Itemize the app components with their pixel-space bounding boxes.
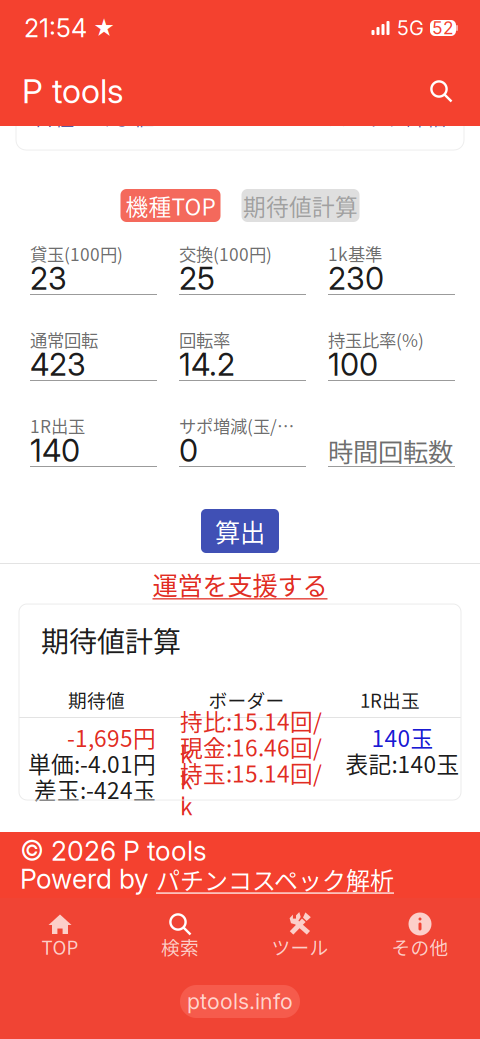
button[interactable]: その他 — [360, 909, 480, 957]
button[interactable]: Search — [422, 72, 460, 110]
staticText: 時間回転数 — [328, 432, 453, 469]
staticText: 検索 — [161, 933, 199, 960]
staticText: 持玉比率(%) — [328, 327, 424, 352]
staticText: ptools.info — [187, 989, 293, 1014]
staticText: 期待値計算 — [243, 189, 358, 222]
staticText: 140玉 — [371, 721, 433, 753]
staticText: その他 — [391, 933, 448, 960]
staticText: 21:54 — [24, 13, 87, 43]
staticText: 1k基準 — [328, 241, 382, 266]
staticText: ツール — [271, 933, 328, 960]
staticText: 140 — [30, 432, 80, 469]
staticText: ボーダー — [208, 686, 284, 713]
button[interactable]: 期待値計算 — [241, 189, 359, 222]
staticText: ★ — [87, 15, 115, 41]
button[interactable]: ツール — [240, 909, 360, 957]
button[interactable]: ptools.info — [180, 985, 300, 1018]
staticText: サポ増減(玉/回… — [179, 413, 306, 438]
staticText: パチンコスペック解析 — [156, 862, 394, 896]
staticText: -1,695円 — [67, 721, 156, 753]
staticText: 交換(100円) — [179, 241, 272, 266]
staticText: 持比:15.14回/k — [180, 704, 322, 770]
staticText: 23 — [30, 260, 67, 297]
staticText: 期待値 — [68, 686, 125, 713]
staticText: 1R出玉 — [30, 413, 85, 438]
staticText: © 2026 P tools — [20, 835, 207, 867]
staticText: 機種TOP — [125, 189, 215, 222]
staticText: 差玉:-424玉 — [34, 773, 156, 805]
button[interactable]: 算出 — [201, 509, 279, 553]
button[interactable]: 運営を支援する — [152, 570, 327, 598]
staticText: 持玉:15.14回/k — [180, 756, 322, 822]
staticText: 貸玉(100円) — [30, 241, 123, 266]
staticText: 日種シくま値 — [34, 102, 154, 131]
staticText: 52 — [432, 17, 454, 38]
staticText: 単価:-4.01円 — [28, 747, 156, 779]
staticText: 5G — [391, 16, 430, 40]
button[interactable]: 機種TOP — [120, 189, 220, 222]
button[interactable]: TOP — [0, 909, 120, 957]
staticText: 表記:140玉 — [345, 747, 459, 779]
button[interactable]: 検索 — [120, 909, 240, 957]
staticText: 通常回転 — [30, 327, 98, 352]
staticText: 算出 — [215, 513, 265, 549]
staticText: 423 — [30, 346, 86, 383]
button[interactable]: パチンコスペック解析 — [156, 862, 394, 896]
staticText: P tools — [22, 71, 124, 111]
staticText: TOP — [41, 933, 78, 960]
staticText: 14.2 — [179, 346, 235, 383]
staticText: 運営を支援する — [152, 566, 327, 602]
staticText: 230 — [328, 260, 384, 297]
staticText: Powerd by — [20, 863, 156, 895]
staticText: 0 — [179, 432, 198, 469]
staticText: スペック詳細 — [327, 102, 446, 131]
staticText: 期待値計算 — [41, 620, 181, 660]
staticText: 25 — [179, 260, 215, 297]
staticText: 100 — [328, 346, 378, 383]
staticText: 1R出玉 — [360, 686, 420, 713]
staticText: 現金:16.46回/k — [180, 730, 322, 796]
staticText: 回転率 — [179, 327, 230, 352]
